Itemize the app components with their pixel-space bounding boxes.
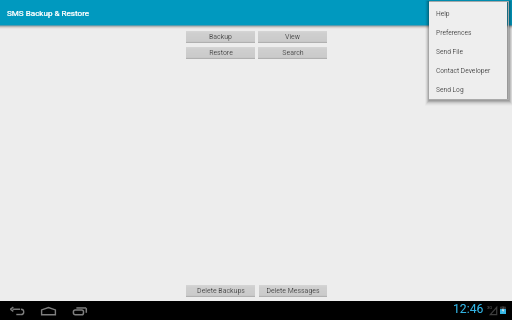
staticText: Backup <box>209 33 232 41</box>
button[interactable]: Search <box>258 47 327 59</box>
staticText: 3G <box>487 305 493 310</box>
staticText: View <box>285 33 300 41</box>
button[interactable]: Send File <box>429 42 507 61</box>
button[interactable]: View <box>258 31 327 43</box>
staticText: SMS Backup & Restore <box>7 8 90 17</box>
button[interactable]: Restore <box>186 47 255 59</box>
button[interactable]: Home <box>41 307 56 315</box>
button[interactable]: Send Log <box>429 80 507 99</box>
button[interactable]: Contact Developer <box>429 61 507 80</box>
staticText: Restore <box>209 49 233 57</box>
staticText: Send Log <box>436 86 464 94</box>
button[interactable]: Recent apps <box>73 307 87 315</box>
staticText: Preferences <box>436 29 472 37</box>
button[interactable]: Delete Messages <box>259 285 327 297</box>
button[interactable]: Help <box>429 4 507 23</box>
staticText: Delete Messages <box>266 287 320 295</box>
staticText: Help <box>436 10 450 18</box>
button[interactable]: Back <box>10 307 24 315</box>
staticText: Delete Backups <box>197 287 245 295</box>
staticText: Send File <box>436 48 463 56</box>
staticText: 12:46 <box>453 302 484 316</box>
staticText: Contact Developer <box>436 67 491 75</box>
button[interactable]: Delete Backups <box>186 285 255 297</box>
staticText: Search <box>282 49 304 57</box>
button[interactable]: Preferences <box>429 23 507 42</box>
button[interactable]: Backup <box>186 31 255 43</box>
